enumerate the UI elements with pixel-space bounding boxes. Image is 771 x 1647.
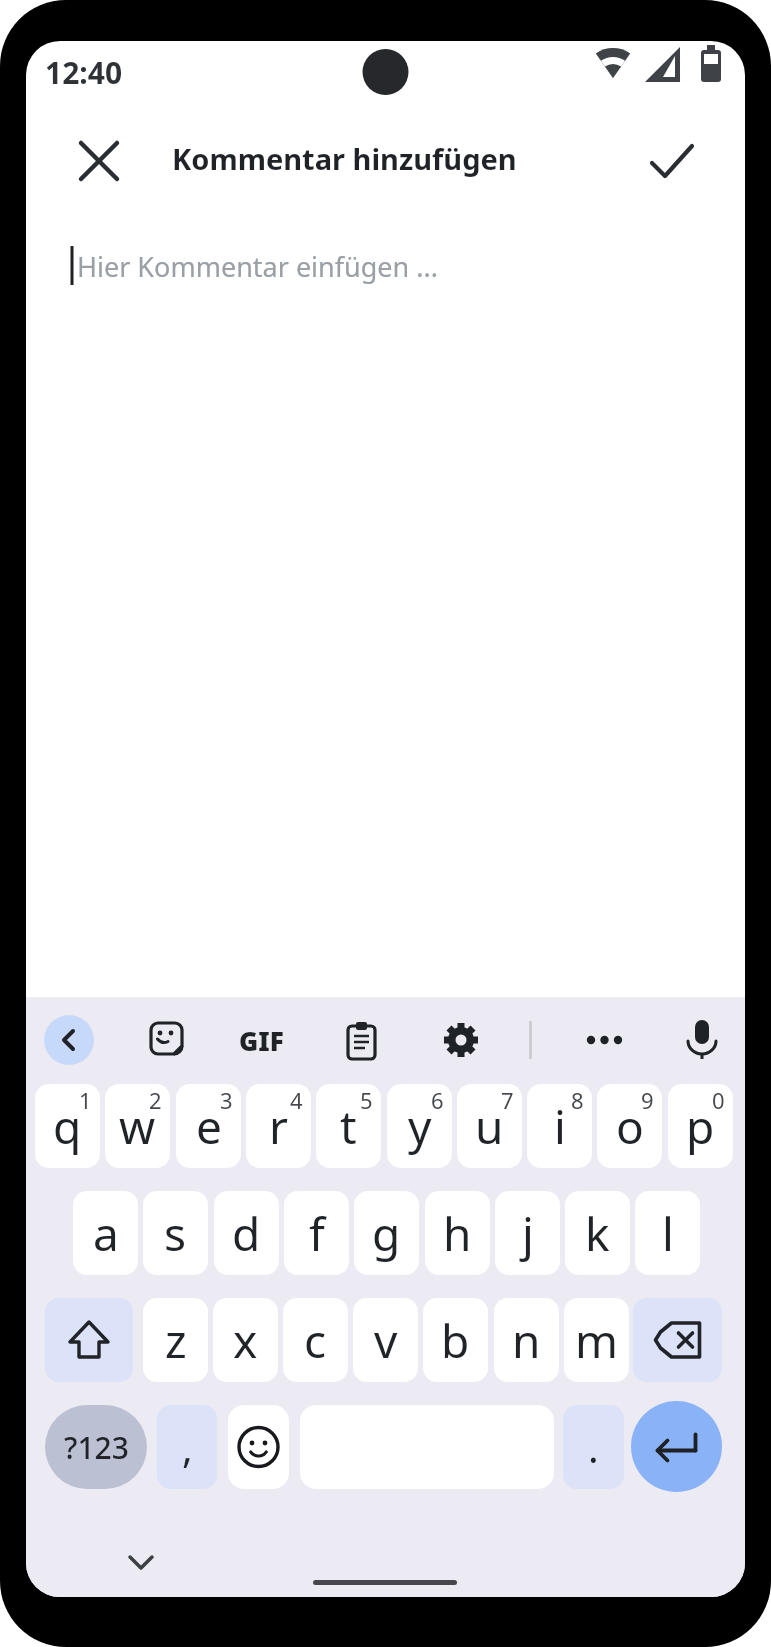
- button[interactable]: e: [176, 1084, 241, 1168]
- staticText: d: [232, 1202, 261, 1265]
- button[interactable]: y: [387, 1084, 452, 1168]
- button[interactable]: u: [457, 1084, 522, 1168]
- button[interactable]: [341, 1020, 381, 1060]
- button[interactable]: [228, 1405, 289, 1489]
- button[interactable]: g: [354, 1191, 419, 1275]
- button[interactable]: z: [143, 1298, 208, 1382]
- staticText: 8: [571, 1085, 584, 1115]
- staticText: 3: [220, 1085, 233, 1115]
- button[interactable]: k: [565, 1191, 630, 1275]
- staticText: x: [233, 1309, 258, 1372]
- staticText: o: [616, 1095, 644, 1158]
- button[interactable]: [44, 1015, 94, 1065]
- button[interactable]: j: [495, 1191, 560, 1275]
- button[interactable]: [631, 1401, 722, 1492]
- button[interactable]: ?123: [45, 1405, 147, 1489]
- staticText: m: [575, 1309, 619, 1372]
- staticText: 7: [501, 1085, 514, 1115]
- staticText: r: [269, 1095, 288, 1158]
- button[interactable]: [648, 136, 696, 184]
- button[interactable]: t: [316, 1084, 381, 1168]
- staticText: t: [340, 1095, 357, 1158]
- staticText: 4: [290, 1085, 303, 1115]
- button[interactable]: x: [213, 1298, 278, 1382]
- staticText: y: [408, 1095, 432, 1158]
- button[interactable]: f: [284, 1191, 349, 1275]
- button[interactable]: ,: [157, 1405, 217, 1489]
- staticText: 6: [431, 1085, 444, 1115]
- staticText: l: [662, 1202, 674, 1265]
- button[interactable]: [45, 1298, 133, 1382]
- button[interactable]: d: [214, 1191, 279, 1275]
- staticText: e: [196, 1095, 222, 1158]
- button[interactable]: .: [563, 1405, 624, 1489]
- button[interactable]: c: [283, 1298, 348, 1382]
- staticText: 2: [149, 1085, 162, 1115]
- button[interactable]: [682, 1017, 722, 1063]
- button[interactable]: [578, 1020, 630, 1060]
- staticText: n: [512, 1309, 541, 1372]
- staticText: f: [309, 1202, 325, 1265]
- staticText: b: [441, 1309, 470, 1372]
- staticText: p: [686, 1095, 715, 1158]
- staticText: Hier Kommentar einfügen ...: [77, 248, 438, 285]
- staticText: Kommentar hinzufügen: [172, 139, 517, 178]
- button[interactable]: n: [494, 1298, 559, 1382]
- staticText: h: [443, 1202, 472, 1265]
- staticText: i: [554, 1095, 566, 1158]
- button[interactable]: [148, 1020, 188, 1060]
- staticText: a: [93, 1202, 119, 1265]
- button[interactable]: [441, 1020, 481, 1060]
- button[interactable]: v: [353, 1298, 418, 1382]
- staticText: 1: [79, 1085, 92, 1115]
- button[interactable]: l: [635, 1191, 700, 1275]
- button[interactable]: Hier Kommentar einfügen ...: [66, 237, 686, 297]
- staticText: 9: [641, 1085, 654, 1115]
- staticText: q: [53, 1095, 82, 1158]
- button[interactable]: h: [425, 1191, 490, 1275]
- button[interactable]: a: [73, 1191, 138, 1275]
- button[interactable]: p: [668, 1084, 733, 1168]
- button[interactable]: q: [35, 1084, 100, 1168]
- staticText: k: [585, 1202, 610, 1265]
- staticText: ?123: [64, 1427, 129, 1468]
- button[interactable]: [75, 137, 123, 185]
- staticText: j: [522, 1202, 534, 1265]
- button[interactable]: s: [143, 1191, 208, 1275]
- button[interactable]: o: [597, 1084, 662, 1168]
- staticText: GIF: [239, 1023, 284, 1058]
- staticText: u: [475, 1095, 504, 1158]
- button[interactable]: b: [423, 1298, 488, 1382]
- button[interactable]: GIF: [231, 1020, 291, 1060]
- staticText: s: [164, 1202, 187, 1265]
- staticText: c: [304, 1309, 327, 1372]
- staticText: 5: [360, 1085, 373, 1115]
- staticText: .: [588, 1420, 599, 1474]
- staticText: g: [372, 1202, 401, 1265]
- button[interactable]: r: [246, 1084, 311, 1168]
- button[interactable]: i: [527, 1084, 592, 1168]
- staticText: z: [165, 1309, 187, 1372]
- staticText: 0: [712, 1085, 725, 1115]
- button[interactable]: [633, 1298, 722, 1382]
- button[interactable]: w: [105, 1084, 170, 1168]
- button[interactable]: m: [564, 1298, 629, 1382]
- staticText: 12:40: [45, 52, 123, 93]
- staticText: ,: [182, 1420, 193, 1474]
- staticText: w: [119, 1095, 156, 1158]
- staticText: v: [374, 1309, 398, 1372]
